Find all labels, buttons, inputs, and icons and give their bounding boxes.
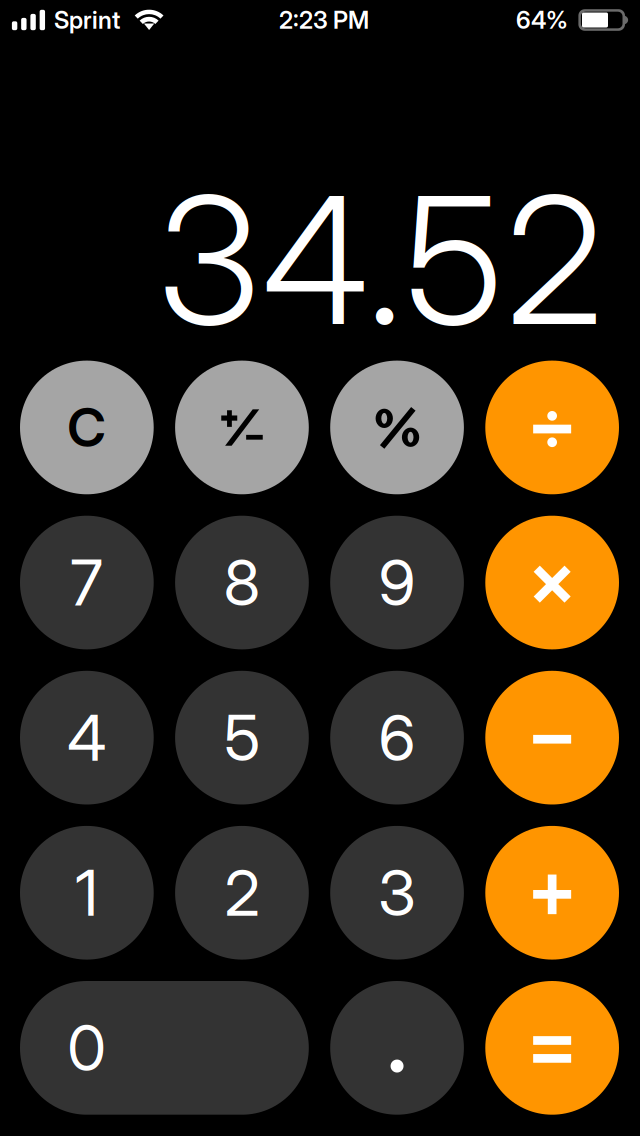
button[interactable]: 6 <box>330 671 464 804</box>
button[interactable]: Divide <box>485 361 619 494</box>
staticText: 7 <box>70 544 103 621</box>
staticText: Sprint <box>54 5 120 34</box>
staticText: 64% <box>516 5 568 34</box>
staticText: 9 <box>378 544 415 621</box>
button[interactable]: Decimal point <box>330 981 464 1115</box>
staticText: 3 <box>378 854 416 931</box>
staticText: 34.52 <box>158 153 603 366</box>
button[interactable]: 9 <box>330 516 464 649</box>
button[interactable]: 3 <box>330 826 464 960</box>
staticText: C <box>67 395 106 460</box>
button[interactable]: C <box>20 361 154 494</box>
button[interactable]: 8 <box>175 516 309 649</box>
button[interactable]: Equals <box>485 981 619 1115</box>
staticText: 4 <box>67 699 106 776</box>
button[interactable]: Multiply <box>485 516 619 649</box>
button[interactable]: Add <box>485 826 619 960</box>
staticText: 5 <box>224 699 260 776</box>
button[interactable]: 1 <box>20 826 154 960</box>
staticText: 0 <box>67 1010 106 1086</box>
button[interactable]: 7 <box>20 516 154 649</box>
staticText: 6 <box>378 699 415 776</box>
button[interactable]: 5 <box>175 671 309 804</box>
button[interactable]: Subtract <box>485 671 619 804</box>
staticText: 8 <box>223 544 260 621</box>
staticText: 2 <box>224 854 259 931</box>
button[interactable]: 0 <box>20 981 309 1115</box>
button[interactable]: Percent <box>330 361 464 494</box>
button[interactable]: 4 <box>20 671 154 804</box>
button[interactable]: 2 <box>175 826 309 960</box>
button[interactable]: Plus Minus <box>175 361 309 494</box>
staticText: 2:23 PM <box>279 5 369 34</box>
staticText: 1 <box>75 854 98 931</box>
